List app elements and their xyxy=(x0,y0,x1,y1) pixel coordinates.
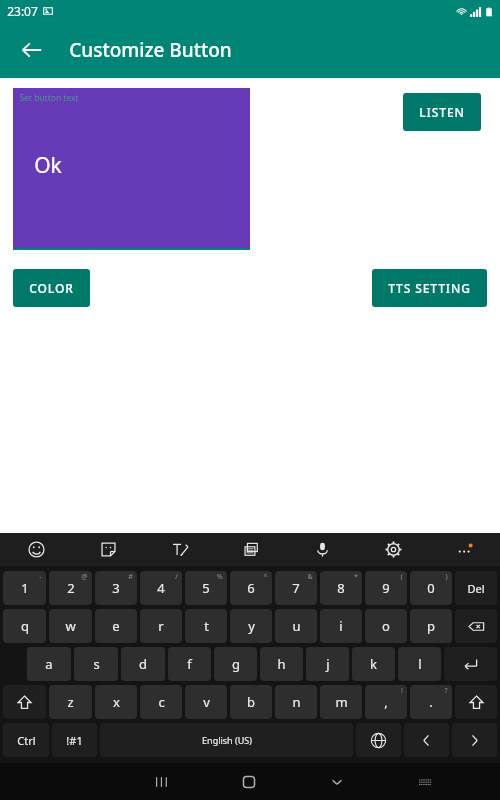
button[interactable]: 9 xyxy=(365,571,407,605)
button[interactable]: z xyxy=(49,685,92,719)
button[interactable]: 2 xyxy=(49,571,92,605)
staticText: t xyxy=(204,617,209,635)
staticText: ^ xyxy=(263,572,268,582)
staticText: d xyxy=(139,655,147,673)
button[interactable]: 3 xyxy=(95,571,137,605)
button[interactable]: Stickers xyxy=(72,533,144,566)
button[interactable]: 6 xyxy=(230,571,272,605)
staticText: 7 xyxy=(292,579,300,597)
button[interactable]: p xyxy=(410,609,452,643)
button[interactable]: 8 xyxy=(320,571,362,605)
button[interactable]: Move cursor left xyxy=(404,723,449,757)
staticText: - xyxy=(39,572,42,582)
staticText: Ok xyxy=(34,151,62,180)
staticText: z xyxy=(67,693,74,711)
button[interactable]: f xyxy=(168,647,211,681)
staticText: & xyxy=(307,572,313,582)
button[interactable]: Back xyxy=(8,26,56,74)
button[interactable]: o xyxy=(365,609,407,643)
staticText: v xyxy=(203,693,210,711)
button[interactable]: j xyxy=(306,647,349,681)
button[interactable]: 1 xyxy=(3,571,46,605)
button[interactable]: u xyxy=(275,609,317,643)
button[interactable]: a xyxy=(27,647,71,681)
button[interactable]: Move cursor right xyxy=(452,723,497,757)
button[interactable]: c xyxy=(140,685,182,719)
button[interactable]: v xyxy=(185,685,227,719)
staticText: y xyxy=(248,617,255,635)
staticText: 2 xyxy=(67,579,75,597)
button[interactable]: Hide keyboard xyxy=(293,763,381,800)
staticText: % xyxy=(217,572,223,582)
button[interactable]: Home xyxy=(205,763,293,800)
button[interactable]: r xyxy=(140,609,182,643)
staticText: l xyxy=(418,655,422,673)
button[interactable]: h xyxy=(260,647,303,681)
staticText: i xyxy=(339,617,343,635)
staticText: ! xyxy=(401,686,403,696)
button[interactable]: 7 xyxy=(275,571,317,605)
staticText: 23:07 xyxy=(7,3,38,19)
button[interactable]: Shift xyxy=(3,685,46,719)
staticText: !#1 xyxy=(66,733,83,748)
staticText: 8 xyxy=(337,579,345,597)
staticText: 9 xyxy=(382,579,390,597)
staticText: 0 xyxy=(427,579,435,597)
button[interactable]: Handwriting xyxy=(144,533,216,566)
button[interactable]: t xyxy=(185,609,227,643)
button[interactable]: Shift xyxy=(455,685,497,719)
button[interactable]: 5 xyxy=(185,571,227,605)
staticText: o xyxy=(382,617,390,635)
button[interactable]: Recents xyxy=(116,763,205,800)
button[interactable]: More options xyxy=(429,533,500,566)
staticText: 1 xyxy=(21,579,29,597)
button[interactable]: Enter xyxy=(444,647,497,681)
staticText: a xyxy=(45,655,53,673)
button[interactable]: d xyxy=(121,647,165,681)
button[interactable]: Backspace xyxy=(455,609,497,643)
button[interactable]: b xyxy=(230,685,272,719)
staticText: Customize Button xyxy=(69,37,232,63)
button[interactable]: Emoji xyxy=(0,533,72,566)
button[interactable]: TTS SETTING xyxy=(372,269,487,307)
button[interactable]: . xyxy=(410,685,452,719)
staticText: @ xyxy=(81,572,88,582)
button[interactable]: 0 xyxy=(410,571,452,605)
button[interactable]: LISTEN xyxy=(403,93,481,131)
button[interactable]: e xyxy=(95,609,137,643)
button[interactable]: English (US) xyxy=(100,723,353,757)
button[interactable]: Change language xyxy=(356,723,401,757)
button[interactable]: COLOR xyxy=(13,269,90,307)
staticText: ? xyxy=(444,686,448,696)
staticText: u xyxy=(292,617,301,635)
button[interactable]: Voice input xyxy=(287,533,358,566)
button[interactable]: x xyxy=(95,685,137,719)
staticText: q xyxy=(21,617,29,635)
button[interactable]: Del xyxy=(455,571,497,605)
button[interactable]: Keyboard xyxy=(381,763,469,800)
button[interactable]: Set button text xyxy=(13,88,250,248)
staticText: 3 xyxy=(112,579,120,597)
button[interactable]: i xyxy=(320,609,362,643)
staticText: TTS SETTING xyxy=(388,280,471,296)
button[interactable]: m xyxy=(320,685,362,719)
staticText: e xyxy=(112,617,120,635)
button[interactable]: Clipboard xyxy=(216,533,287,566)
button[interactable]: g xyxy=(214,647,257,681)
staticText: COLOR xyxy=(29,280,74,296)
staticText: j xyxy=(326,655,330,673)
staticText: ) xyxy=(445,572,448,582)
button[interactable]: Settings xyxy=(358,533,429,566)
button[interactable]: , xyxy=(365,685,407,719)
staticText: m xyxy=(335,693,348,711)
button[interactable]: Ctrl xyxy=(3,723,49,757)
button[interactable]: q xyxy=(3,609,46,643)
button[interactable]: w xyxy=(49,609,92,643)
button[interactable]: !#1 xyxy=(52,723,97,757)
button[interactable]: s xyxy=(74,647,118,681)
button[interactable]: k xyxy=(352,647,395,681)
button[interactable]: 4 xyxy=(140,571,182,605)
button[interactable]: l xyxy=(398,647,441,681)
button[interactable]: y xyxy=(230,609,272,643)
button[interactable]: n xyxy=(275,685,317,719)
